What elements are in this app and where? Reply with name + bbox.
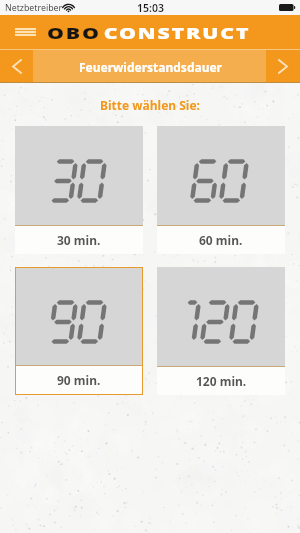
button[interactable]: Menu <box>0 15 48 50</box>
staticText: CONSTRUCT <box>104 23 251 43</box>
staticText: 30 min. <box>57 232 101 248</box>
staticText: Netzbetreiber <box>5 2 63 14</box>
button[interactable]: 30 min. <box>15 126 143 254</box>
staticText: 120 min. <box>196 373 247 389</box>
button[interactable]: Forward <box>266 50 300 83</box>
button[interactable]: 90 min. <box>15 267 143 395</box>
button[interactable]: Back <box>0 50 33 83</box>
staticText: Feuerwiderstandsdauer <box>79 59 222 75</box>
button[interactable]: 60 min. <box>157 126 285 254</box>
staticText: 90 min. <box>57 372 101 388</box>
button[interactable]: 120 min. <box>157 267 285 395</box>
staticText: 15:03 <box>137 1 164 15</box>
staticText: Bitte wählen Sie: <box>0 97 300 113</box>
staticText: OBO <box>47 23 101 43</box>
staticText: 60 min. <box>199 232 243 248</box>
